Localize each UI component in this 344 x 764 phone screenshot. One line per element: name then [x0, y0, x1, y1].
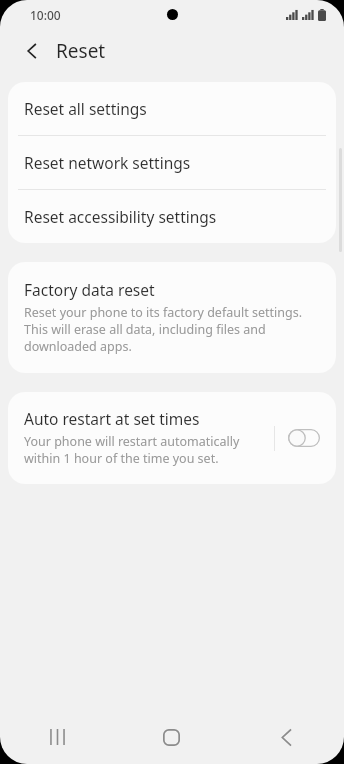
- button[interactable]: Back: [229, 710, 344, 764]
- staticText: Factory data reset: [24, 279, 155, 300]
- staticText: Auto restart at set times: [24, 408, 200, 429]
- button[interactable]: Recents: [0, 710, 114, 764]
- button[interactable]: Home: [114, 710, 229, 764]
- button[interactable]: Auto restart at set times toggle: [284, 418, 324, 458]
- staticText: Reset your phone to its factory default …: [24, 304, 318, 355]
- staticText: Reset: [56, 38, 106, 64]
- staticText: Reset accessibility settings: [24, 206, 217, 227]
- staticText: Your phone will restart automatically wi…: [24, 433, 266, 467]
- button[interactable]: Back: [12, 31, 52, 71]
- button[interactable]: Factory data reset: [8, 262, 336, 373]
- button[interactable]: Reset all settings: [8, 82, 336, 135]
- staticText: 10:00: [30, 7, 61, 23]
- staticText: Reset all settings: [24, 98, 147, 119]
- button[interactable]: Reset network settings: [8, 136, 336, 189]
- button[interactable]: Reset accessibility settings: [8, 190, 336, 243]
- staticText: Reset network settings: [24, 152, 191, 173]
- button[interactable]: Auto restart at set times: [8, 392, 274, 484]
